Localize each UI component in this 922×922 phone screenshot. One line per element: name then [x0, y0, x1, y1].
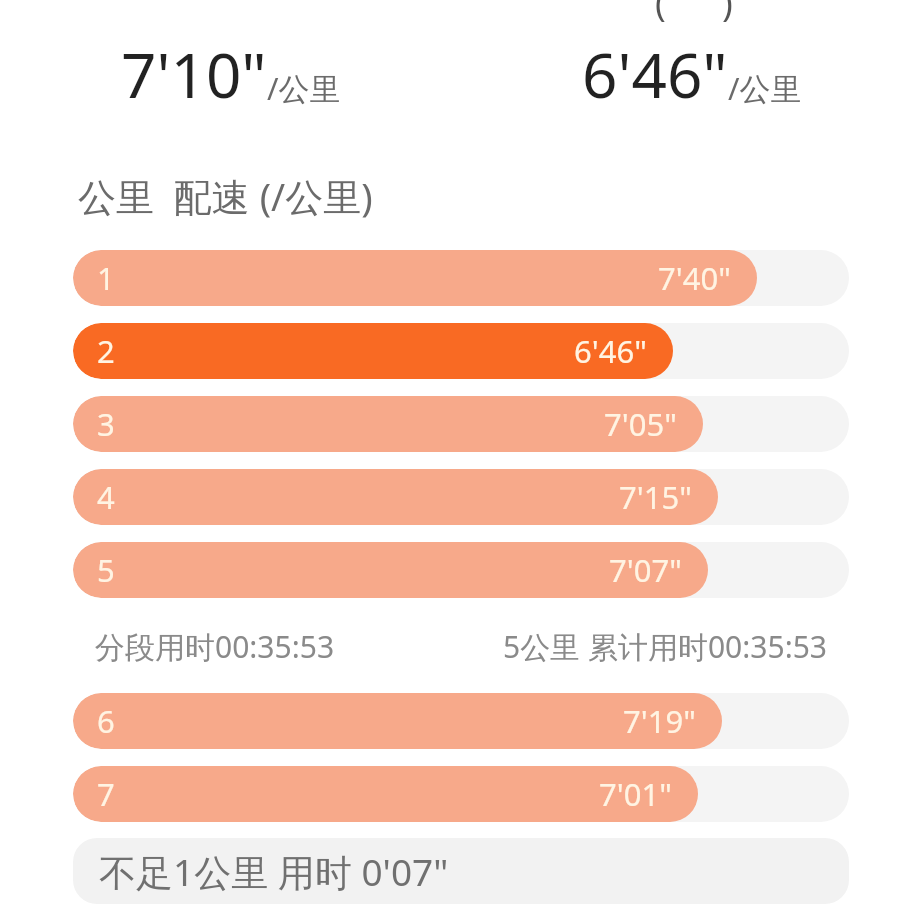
staticText: 7'15" [619, 476, 692, 518]
button[interactable]: 不足1公里 用时 0'07" [73, 838, 849, 904]
button[interactable]: 4 [73, 469, 849, 525]
staticText: 7'10" [121, 32, 267, 116]
staticText: 6'46" [574, 330, 647, 372]
button[interactable]: 7 [73, 766, 849, 822]
staticText: 7 [97, 773, 115, 815]
staticText: 7'19" [623, 700, 696, 742]
staticText: 4 [97, 476, 115, 518]
staticText: /公里 [267, 67, 341, 109]
staticText: 5公里 累计用时00:35:53 [503, 626, 827, 667]
staticText: 6'46" [582, 32, 728, 116]
staticText: /公里 [728, 67, 802, 109]
staticText: 7'05" [604, 403, 677, 445]
staticText: 7'01" [599, 773, 672, 815]
staticText: 分段用时00:35:53 [95, 626, 335, 667]
staticText: 5 [97, 549, 115, 591]
staticText: 3 [97, 403, 115, 445]
staticText: 不足1公里 用时 0'07" [99, 846, 449, 897]
button[interactable]: 2 [73, 323, 849, 379]
button[interactable]: 1 [73, 250, 849, 306]
staticText: 7'40" [658, 257, 731, 299]
button[interactable]: 6 [73, 693, 849, 749]
button[interactable]: 3 [73, 396, 849, 452]
staticText: 6 [97, 700, 115, 742]
button[interactable]: 5 [73, 542, 849, 598]
staticText: 2 [97, 330, 115, 372]
staticText: ( ) [655, 0, 733, 27]
staticText: 公里 配速 (/公里) [78, 170, 373, 222]
staticText: 7'07" [609, 549, 682, 591]
staticText: 1 [97, 257, 115, 299]
